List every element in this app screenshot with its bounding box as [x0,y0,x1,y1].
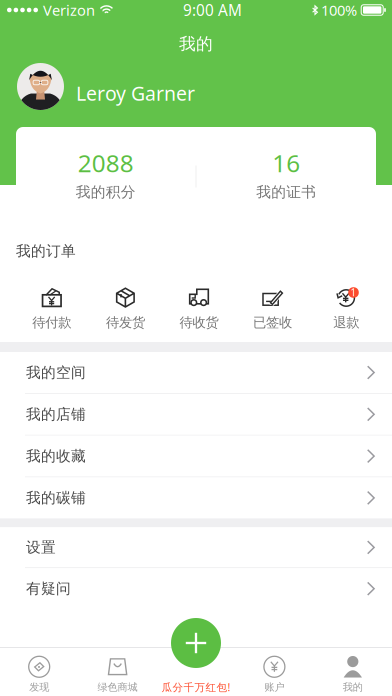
button[interactable]: 2088 [16,152,195,201]
staticText: 16 [272,146,300,179]
button[interactable]: 待收货 [162,287,236,331]
staticText: Verizon [43,0,95,20]
staticText: 发现 [29,681,49,694]
button[interactable]: 瓜分千万红包! [157,655,235,694]
staticText: 我的订单 [16,242,76,260]
button[interactable]: 我的 [314,656,392,694]
staticText: 我的空间 [26,363,86,382]
staticText: 已签收 [253,314,292,331]
staticText: 账户 [264,681,284,694]
staticText: 1 [350,286,356,299]
staticText: 退款 [333,314,359,331]
staticText: 我的证书 [256,183,316,201]
staticText: 我的积分 [76,183,136,201]
staticText: 有疑问 [26,579,71,598]
staticText: 待发货 [106,314,145,331]
button[interactable]: 我的碳铺 [0,477,392,518]
button[interactable]: 待发货 [89,287,162,331]
button[interactable]: Add [171,618,221,668]
staticText: 绿色商城 [98,681,138,694]
staticText: 9:00 AM [183,0,242,20]
staticText: 2088 [78,146,134,179]
button[interactable]: 有疑问 [0,568,392,609]
button[interactable]: 我的收藏 [0,436,392,477]
staticText: Leroy Garner [76,80,195,106]
staticText: 待付款 [32,314,71,331]
button[interactable]: 我的空间 [0,352,392,393]
button[interactable]: 发现 [0,656,78,694]
button[interactable]: 绿色商城 [78,656,157,694]
button[interactable]: 已签收 [236,287,309,331]
staticText: 我的 [343,681,363,694]
button[interactable]: 我的店铺 [0,394,392,435]
staticText: 瓜分千万红包! [161,680,230,694]
staticText: 待收货 [179,314,218,331]
button[interactable]: 待付款 [15,287,89,331]
staticText: 我的收藏 [26,447,86,465]
staticText: 设置 [26,538,56,557]
staticText: 我的碳铺 [26,489,86,507]
staticText: 100% [321,0,357,20]
staticText: 我的店铺 [26,405,86,424]
button[interactable]: 1 [309,287,383,331]
staticText: 我的 [179,33,213,54]
button[interactable]: 账户 [235,656,314,694]
button[interactable]: 设置 [0,527,392,567]
button[interactable]: 16 [196,152,376,201]
